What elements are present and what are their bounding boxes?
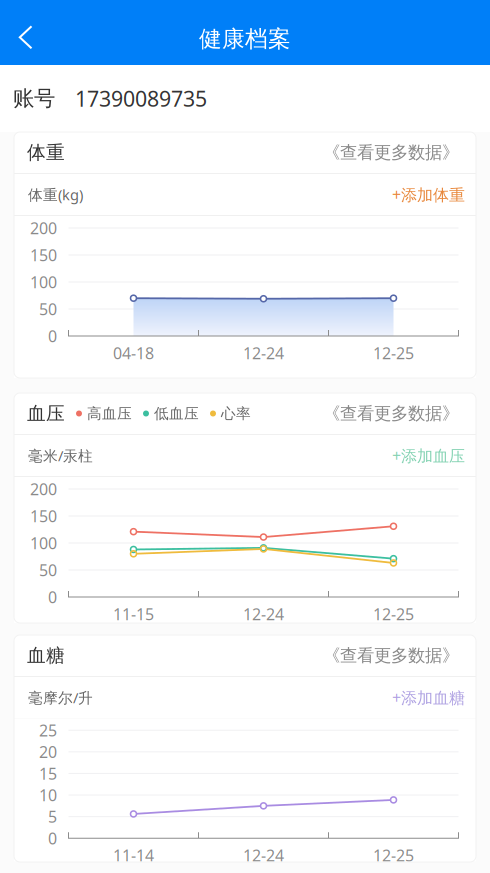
staticText: 150 (30, 505, 57, 527)
button[interactable]: Back (0, 0, 47, 65)
button[interactable]: 《查看更多数据》 (323, 393, 476, 434)
staticText: 12-24 (243, 845, 284, 866)
staticText: 12-25 (373, 603, 414, 625)
staticText: +添加血压 (392, 445, 465, 466)
staticText: 0 (48, 586, 57, 608)
staticText: 20 (39, 741, 57, 762)
staticText: 5 (48, 806, 57, 827)
staticText: 体重(kg) (28, 185, 83, 204)
staticText: +添加体重 (392, 184, 465, 205)
staticText: 100 (30, 271, 57, 293)
staticText: 0 (48, 325, 57, 347)
staticText: 17390089735 (75, 84, 207, 113)
staticText: 心率 (221, 404, 251, 422)
button[interactable]: +添加血糖 (392, 677, 476, 718)
staticText: 血糖 (27, 644, 65, 667)
button[interactable]: +添加体重 (392, 174, 476, 215)
staticText: 25 (39, 720, 57, 741)
staticText: +添加血糖 (392, 687, 465, 708)
staticText: 11-15 (113, 603, 154, 625)
staticText: 11-14 (113, 845, 154, 866)
staticText: 毫米/汞柱 (28, 446, 93, 465)
staticText: 健康档案 (199, 25, 291, 53)
staticText: 200 (30, 478, 57, 500)
staticText: 12-25 (373, 845, 414, 866)
staticText: 0 (48, 828, 57, 849)
staticText: 150 (30, 244, 57, 266)
button[interactable]: 《查看更多数据》 (323, 132, 476, 173)
button[interactable]: 《查看更多数据》 (323, 635, 476, 676)
staticText: 50 (39, 559, 57, 581)
staticText: 200 (30, 217, 57, 239)
staticText: 15 (39, 763, 57, 784)
staticText: 高血压 (87, 404, 132, 422)
button[interactable]: +添加血压 (392, 435, 476, 476)
staticText: 12-24 (243, 342, 284, 364)
staticText: 血压 (27, 402, 65, 425)
staticText: 04-18 (113, 342, 154, 364)
staticText: 体重 (27, 141, 65, 164)
staticText: 账号 (13, 85, 55, 112)
staticText: 10 (39, 784, 57, 806)
staticText: 低血压 (154, 404, 199, 422)
staticText: 《查看更多数据》 (323, 403, 459, 424)
staticText: 毫摩尔/升 (28, 688, 93, 707)
staticText: 50 (39, 298, 57, 320)
staticText: 12-25 (373, 342, 414, 364)
staticText: 《查看更多数据》 (323, 142, 459, 163)
staticText: 100 (30, 532, 57, 554)
staticText: 12-24 (243, 603, 284, 625)
staticText: 《查看更多数据》 (323, 645, 459, 666)
